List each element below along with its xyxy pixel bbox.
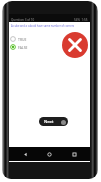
button[interactable]: FALSE <box>10 43 91 51</box>
staticText: A cube and a cuboid have same number of … <box>11 24 75 28</box>
staticText: Question 3 of 10 <box>11 18 35 22</box>
button[interactable]: Next <box>39 117 68 126</box>
button[interactable]: TRUE <box>10 35 91 43</box>
staticText: TRUE <box>18 37 27 42</box>
staticText: FALSE <box>18 45 28 50</box>
button[interactable]: Recents <box>68 148 80 160</box>
button[interactable]: Back <box>19 148 31 160</box>
staticText: Next <box>44 119 54 125</box>
button[interactable]: Home <box>43 148 55 160</box>
staticText: 54% 1:55 <box>74 18 88 22</box>
